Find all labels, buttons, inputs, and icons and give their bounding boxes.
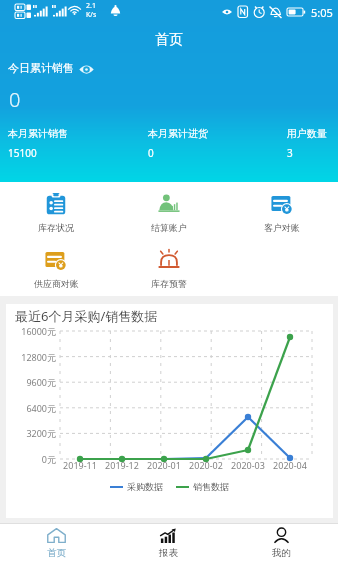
staticText: 0元 [6,453,56,465]
staticText: 3 [287,146,293,160]
staticText: 2019-12 [99,459,145,471]
button[interactable]: 报表 [112,524,225,563]
staticText: 结算账户 [151,222,187,233]
staticText: 6400元 [6,402,56,414]
staticText: 库存状况 [38,222,74,233]
staticText: 报表 [159,547,178,559]
staticText: 2020-04 [267,459,313,471]
button[interactable]: Toggle visibility [79,64,94,75]
staticText: 2020-03 [225,459,271,471]
staticText: 2020-01 [141,459,187,471]
staticText: 供应商对账 [34,278,79,289]
staticText: 2.1 [86,1,96,11]
staticText: 12800元 [6,351,56,363]
staticText: 客户对账 [264,222,300,233]
staticText: 16000元 [6,325,56,337]
staticText: 今日累计销售 [8,61,74,75]
staticText: 我的 [272,547,291,559]
staticText: K/s [86,10,97,20]
staticText: 15100 [8,146,37,160]
button[interactable]: 结算账户 [112,193,225,233]
staticText: 最近6个月采购/销售数据 [15,307,158,325]
staticText: 2019-11 [57,459,103,471]
button[interactable]: 客户对账 [225,193,338,233]
staticText: 用户数量 [287,127,327,140]
staticText: 首页 [155,31,183,49]
staticText: 首页 [47,547,66,559]
staticText: 本月累计进货 [148,127,208,140]
staticText: 9600元 [6,376,56,388]
staticText: 本月累计销售 [8,127,68,140]
staticText: 0 [9,86,21,113]
staticText: 3200元 [6,427,56,439]
staticText: 销售数据 [193,481,229,492]
staticText: 采购数据 [127,481,163,492]
button[interactable]: 库存预警 [112,249,225,289]
button[interactable]: 供应商对账 [0,249,112,289]
staticText: 5:05 [311,5,333,20]
staticText: 库存预警 [151,278,187,289]
button[interactable]: 首页 [0,524,112,563]
button[interactable]: 我的 [225,524,338,563]
button[interactable]: 库存状况 [0,193,112,233]
staticText: 2020-02 [183,459,229,471]
staticText: 0 [148,146,154,160]
